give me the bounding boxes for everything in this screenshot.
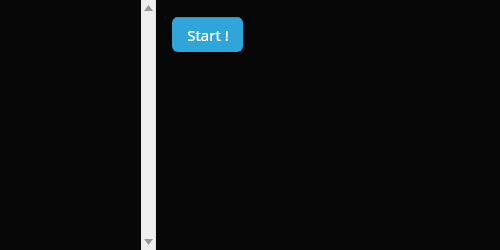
staticText: Start !: [187, 25, 229, 45]
button[interactable]: Scroll down: [141, 234, 156, 250]
button[interactable]: Start !: [172, 17, 243, 52]
button[interactable]: Scroll up: [141, 0, 156, 16]
